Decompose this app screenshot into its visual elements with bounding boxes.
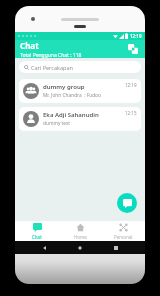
button[interactable]: Personal bbox=[102, 221, 145, 241]
button[interactable]: Home bbox=[59, 221, 102, 241]
staticText: 12:19 bbox=[130, 33, 142, 39]
staticText: Mr. John Chandra : Fudoo bbox=[43, 92, 101, 99]
button[interactable]: New message bbox=[117, 193, 137, 213]
staticText: Cari Percakapan bbox=[31, 64, 73, 71]
button[interactable]: Back bbox=[39, 242, 51, 254]
staticText: Chat bbox=[32, 234, 42, 240]
staticText: 12:19 bbox=[125, 82, 137, 88]
staticText: Personal bbox=[114, 234, 133, 240]
button[interactable]: New chat bbox=[126, 42, 140, 56]
button[interactable]: Home bbox=[74, 242, 86, 254]
button[interactable]: dummy group bbox=[19, 79, 141, 103]
button[interactable]: Recents bbox=[110, 242, 122, 254]
staticText: 12:15 bbox=[125, 110, 137, 116]
staticText: Total Pengguna Chat : 118 bbox=[20, 52, 82, 58]
staticText: Eka Adji Sahanudin bbox=[43, 111, 99, 119]
staticText: Chat bbox=[20, 40, 39, 51]
button[interactable]: Chat bbox=[15, 221, 59, 241]
staticText: Home bbox=[74, 234, 87, 240]
staticText: dummy test bbox=[43, 120, 71, 127]
button[interactable]: Eka Adji Sahanudin bbox=[19, 107, 141, 131]
staticText: dummy group bbox=[43, 83, 85, 91]
button[interactable]: Cari Percakapan bbox=[19, 61, 141, 73]
